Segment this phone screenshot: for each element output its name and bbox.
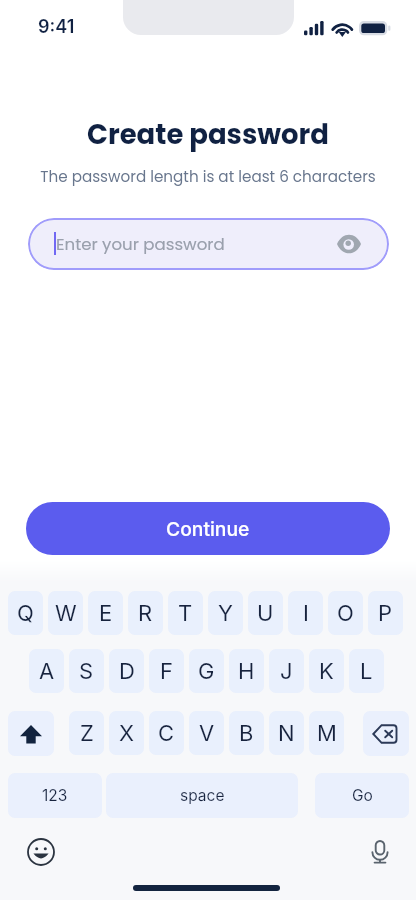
button[interactable]: Continue bbox=[26, 502, 390, 555]
staticText: S bbox=[79, 658, 94, 685]
button[interactable]: W bbox=[48, 591, 83, 635]
button[interactable]: M bbox=[309, 711, 344, 755]
button[interactable]: Q bbox=[8, 591, 43, 635]
staticText: 9:41 bbox=[38, 16, 75, 38]
staticText: N bbox=[278, 720, 295, 747]
button[interactable]: H bbox=[229, 649, 264, 693]
staticText: M bbox=[317, 720, 337, 747]
staticText: W bbox=[55, 600, 77, 627]
button[interactable]: U bbox=[248, 591, 283, 635]
button[interactable]: E bbox=[88, 591, 123, 635]
button[interactable]: 123 bbox=[8, 773, 102, 818]
button[interactable]: X bbox=[109, 711, 144, 755]
button[interactable]: O bbox=[328, 591, 363, 635]
button[interactable]: Y bbox=[208, 591, 243, 635]
staticText: 123 bbox=[42, 786, 68, 805]
button[interactable]: Enter your password bbox=[28, 218, 389, 270]
staticText: X bbox=[119, 720, 135, 747]
staticText: G bbox=[198, 658, 215, 685]
button[interactable]: Emoji bbox=[24, 835, 58, 869]
button[interactable]: F bbox=[149, 649, 184, 693]
staticText: Continue bbox=[166, 517, 250, 540]
staticText: Go bbox=[352, 786, 373, 805]
button[interactable]: Voice input bbox=[363, 835, 397, 869]
other: Show password bbox=[337, 232, 361, 256]
staticText: space bbox=[180, 786, 225, 805]
button[interactable]: T bbox=[168, 591, 203, 635]
button[interactable]: C bbox=[149, 711, 184, 755]
staticText: O bbox=[337, 600, 354, 627]
button[interactable]: S bbox=[69, 649, 104, 693]
staticText: Q bbox=[17, 600, 34, 627]
staticText: J bbox=[280, 658, 293, 685]
staticText: H bbox=[238, 658, 255, 685]
button[interactable]: B bbox=[229, 711, 264, 755]
button[interactable]: A bbox=[29, 649, 64, 693]
button[interactable]: I bbox=[288, 591, 323, 635]
button[interactable]: Shift bbox=[8, 711, 54, 756]
button[interactable]: Backspace bbox=[363, 711, 409, 756]
staticText: B bbox=[239, 720, 254, 747]
staticText: F bbox=[160, 658, 173, 685]
staticText: E bbox=[99, 600, 113, 627]
staticText: Create password bbox=[0, 115, 416, 153]
staticText: R bbox=[138, 600, 153, 627]
button[interactable]: Z bbox=[69, 711, 104, 755]
staticText: Y bbox=[218, 600, 233, 627]
button[interactable]: P bbox=[368, 591, 403, 635]
button[interactable]: G bbox=[189, 649, 224, 693]
staticText: T bbox=[178, 600, 193, 627]
staticText: Z bbox=[80, 720, 94, 747]
staticText: P bbox=[378, 600, 393, 627]
button[interactable]: L bbox=[349, 649, 384, 693]
button[interactable]: R bbox=[128, 591, 163, 635]
staticText: C bbox=[158, 720, 175, 747]
staticText: The password length is at least 6 charac… bbox=[0, 166, 416, 187]
button[interactable]: V bbox=[189, 711, 224, 755]
staticText: D bbox=[119, 658, 135, 685]
button[interactable]: D bbox=[109, 649, 144, 693]
staticText: Enter your password bbox=[56, 233, 225, 256]
staticText: A bbox=[39, 658, 55, 685]
button[interactable]: Go bbox=[315, 773, 409, 818]
staticText: L bbox=[360, 658, 373, 685]
button[interactable]: space bbox=[106, 773, 298, 818]
staticText: U bbox=[257, 600, 274, 627]
button[interactable]: N bbox=[269, 711, 304, 755]
button[interactable]: J bbox=[269, 649, 304, 693]
staticText: V bbox=[199, 720, 215, 747]
staticText: K bbox=[319, 658, 334, 685]
staticText: I bbox=[303, 600, 309, 627]
button[interactable]: K bbox=[309, 649, 344, 693]
